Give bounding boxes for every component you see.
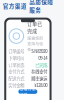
staticText: ¥128.00	[34, 82, 47, 88]
button[interactable]: 查看订单详情	[18, 89, 37, 94]
staticText: 品质保障服务	[29, 0, 53, 14]
staticText: 09-14	[38, 55, 47, 61]
button[interactable]: 下单时间	[8, 54, 47, 61]
button[interactable]: 实付金额	[8, 82, 47, 88]
staticText: 下单时间	[8, 55, 24, 61]
staticText: 在线支付	[31, 68, 47, 75]
staticText: 感谢您的支持与信任	[27, 35, 43, 52]
staticText: 订单状态	[8, 62, 24, 68]
staticText: 配送方式	[8, 75, 24, 81]
staticText: 订单已完成	[27, 20, 42, 34]
button[interactable]: 订单编号	[8, 48, 47, 54]
staticText: 查看订单详情	[20, 86, 36, 97]
staticText: 已完成	[35, 62, 47, 68]
button[interactable]: 订单状态	[8, 61, 47, 68]
staticText: SN83920	[31, 48, 47, 54]
staticText: 顺丰速运	[31, 75, 47, 81]
button[interactable]: 配送方式	[8, 75, 47, 82]
button[interactable]: 支付方式	[8, 68, 47, 75]
staticText: 官方渠道	[3, 2, 27, 10]
staticText: 支付方式	[8, 68, 24, 75]
staticText: 实付金额	[8, 82, 24, 88]
staticText: 订单编号	[8, 48, 24, 54]
